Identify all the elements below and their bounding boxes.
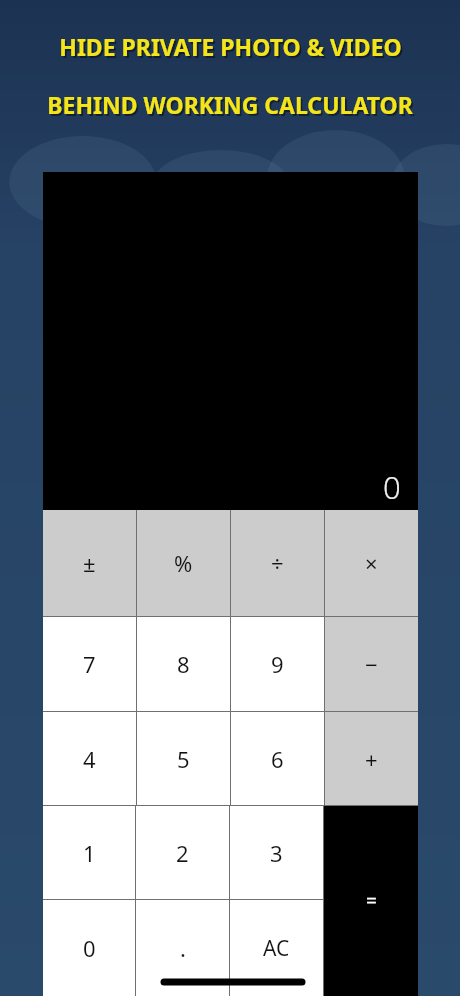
staticText: 4 [83, 744, 96, 774]
button[interactable]: ± [43, 510, 136, 616]
staticText: = [366, 888, 377, 914]
staticText: + [365, 744, 378, 774]
staticText: HIDE PRIVATE PHOTO & VIDEO [61, 33, 404, 64]
button[interactable]: 1 [43, 806, 135, 899]
staticText: BEHIND WORKING CALCULATOR [49, 91, 415, 122]
staticText: 6 [271, 744, 284, 774]
button[interactable]: . [136, 900, 229, 996]
staticText: 8 [177, 649, 190, 679]
staticText: 3 [270, 838, 283, 868]
button[interactable]: + [325, 712, 418, 805]
button[interactable]: AC [230, 900, 323, 996]
button[interactable]: × [325, 510, 418, 616]
button[interactable]: ÷ [231, 510, 324, 616]
button[interactable]: 3 [230, 806, 323, 899]
button[interactable]: 8 [137, 617, 230, 711]
button[interactable]: 4 [43, 712, 136, 805]
staticText: × [365, 548, 378, 578]
staticText: % [174, 548, 193, 578]
staticText: 0 [383, 466, 401, 508]
button[interactable]: 7 [43, 617, 136, 711]
staticText: AC [263, 934, 290, 963]
button[interactable]: 2 [136, 806, 229, 899]
staticText: 2 [176, 838, 189, 868]
staticText: HIDE PRIVATE PHOTO & VIDEO [59, 31, 402, 62]
staticText: − [365, 649, 378, 679]
staticText: 5 [177, 744, 190, 774]
staticText: BEHIND WORKING CALCULATOR [47, 89, 413, 120]
button[interactable]: − [325, 617, 418, 711]
button[interactable]: 9 [231, 617, 324, 711]
staticText: ± [83, 548, 96, 578]
staticText: 0 [83, 933, 96, 963]
staticText: . [180, 933, 186, 963]
staticText: ÷ [271, 548, 284, 578]
button[interactable]: 5 [137, 712, 230, 805]
button[interactable]: % [137, 510, 230, 616]
button[interactable]: 0 [43, 900, 135, 996]
button[interactable]: 6 [231, 712, 324, 805]
staticText: 7 [83, 649, 96, 679]
staticText: 1 [83, 838, 96, 868]
button[interactable]: Equals [324, 806, 418, 996]
staticText: 9 [271, 649, 284, 679]
